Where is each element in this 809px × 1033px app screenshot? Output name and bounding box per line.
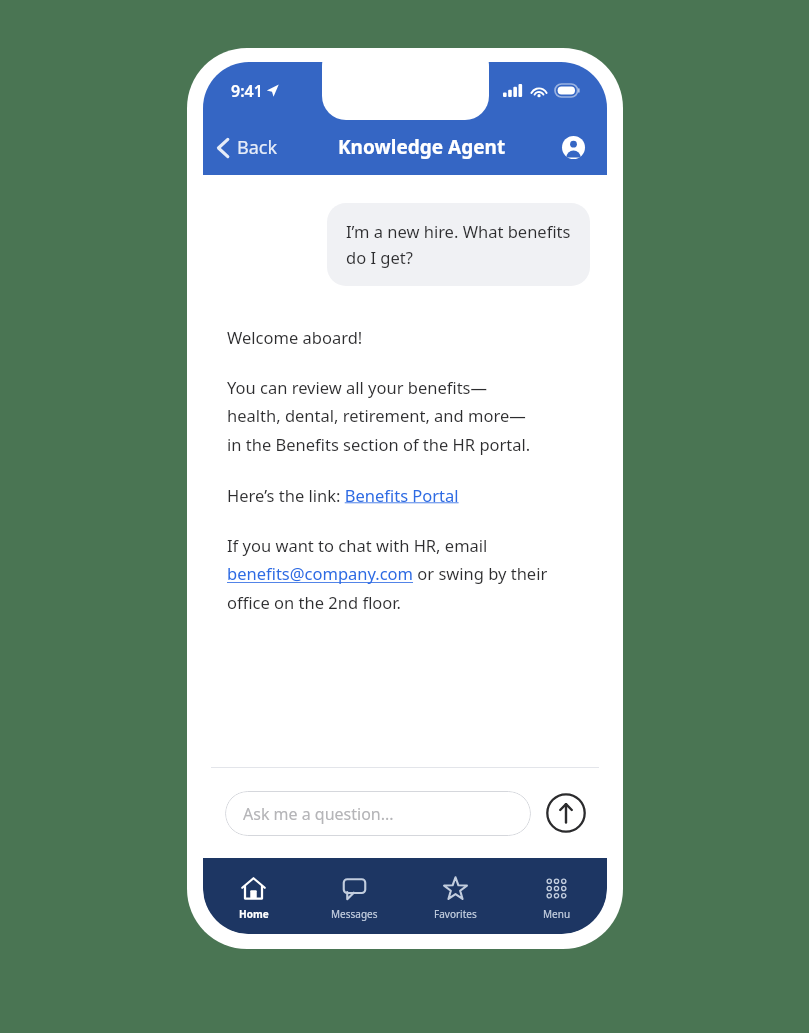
- button[interactable]: If you want to chat with HR, email benef…: [227, 534, 548, 614]
- button[interactable]: I’m a new hire. What benefits do I get?: [327, 203, 590, 286]
- staticText: Knowledge Agent: [338, 134, 506, 160]
- staticText: Ask me a question...: [243, 803, 394, 825]
- staticText: Back: [237, 135, 278, 160]
- button[interactable]: Send: [545, 792, 587, 834]
- staticText: Menu: [543, 907, 571, 921]
- button[interactable]: Here’s the link: Benefits Portal: [227, 484, 459, 506]
- button[interactable]: Back: [203, 125, 288, 170]
- staticText: Messages: [331, 907, 378, 921]
- button[interactable]: Messages: [304, 858, 405, 934]
- button[interactable]: Account: [556, 130, 590, 164]
- staticText: Favorites: [434, 907, 477, 921]
- button[interactable]: Home: [203, 858, 304, 934]
- staticText: Welcome aboard!: [227, 326, 363, 348]
- staticText: You can review all your benefits— health…: [227, 376, 531, 456]
- staticText: I’m a new hire. What benefits do I get?: [346, 220, 571, 269]
- button[interactable]: Ask me a question...: [225, 791, 531, 836]
- staticText: Home: [239, 907, 269, 921]
- button[interactable]: Menu: [506, 858, 607, 934]
- staticText: 9:41: [231, 80, 263, 102]
- button[interactable]: Favorites: [405, 858, 506, 934]
